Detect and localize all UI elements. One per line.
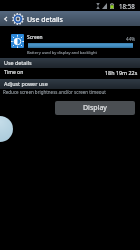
- staticText: Battery used by display and backlight: [27, 50, 97, 55]
- button[interactable]: Navigate up: [0, 11, 11, 26]
- staticText: Screen: [27, 34, 43, 41]
- button[interactable]: Time on: [0, 68, 140, 79]
- staticText: Reduce screen brightness and/or screen t…: [3, 89, 106, 95]
- button[interactable]: Display: [55, 101, 135, 115]
- staticText: Adjust power use: [4, 80, 48, 87]
- staticText: 18:58: [119, 2, 135, 10]
- staticText: Time on: [4, 69, 24, 76]
- staticText: Use details: [27, 15, 63, 25]
- staticText: Use details: [4, 59, 32, 66]
- staticText: 44%: [126, 36, 136, 42]
- staticText: Display: [83, 103, 107, 113]
- staticText: 18h 19m 22s: [105, 69, 138, 76]
